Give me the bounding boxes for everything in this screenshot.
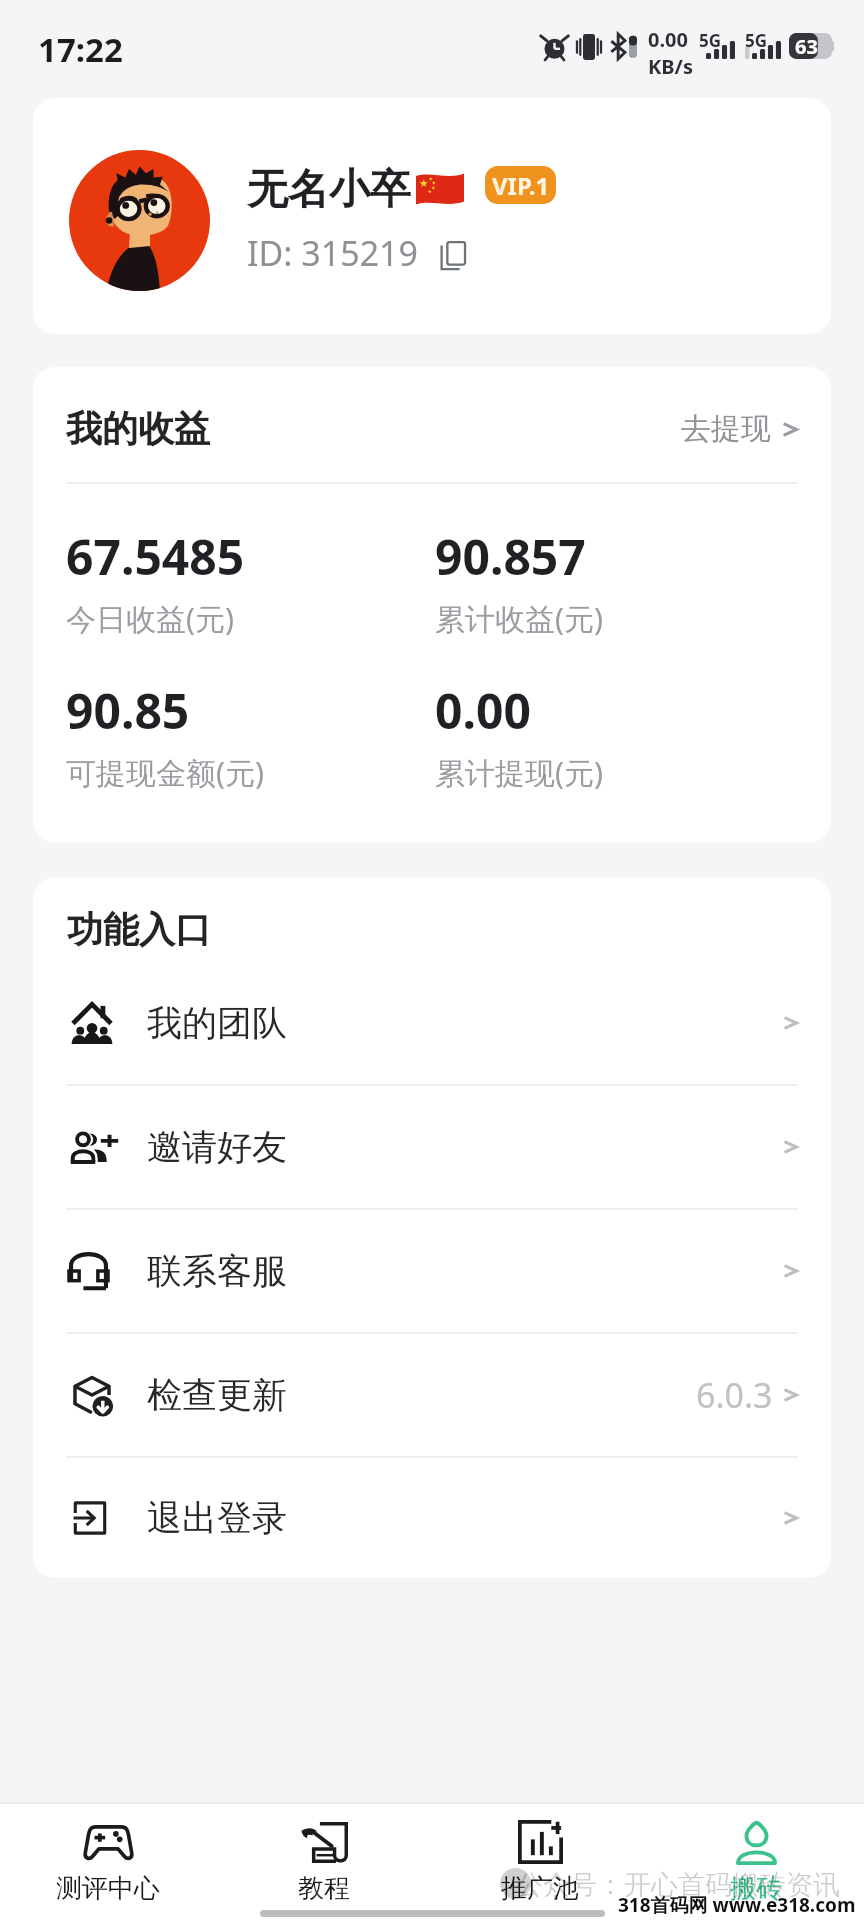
staticText: 我的团队 xyxy=(147,1001,287,1045)
staticText: 公众号：开心首码搬砖资讯 xyxy=(516,1868,840,1902)
button[interactable]: 无名小卒 xyxy=(33,98,831,334)
staticText: 67.5485 xyxy=(66,524,245,589)
staticText: 退出登录 xyxy=(147,1496,287,1540)
staticText: ID: 315219 xyxy=(247,230,418,276)
staticText: 教程 xyxy=(298,1872,350,1905)
button[interactable]: Copy ID xyxy=(440,240,467,271)
staticText: 推广池 xyxy=(501,1872,579,1905)
staticText: 搬砖 xyxy=(730,1872,782,1905)
staticText: 90.857 xyxy=(435,524,586,589)
staticText: 检查更新 xyxy=(147,1373,287,1417)
button[interactable]: 去提现 xyxy=(681,410,798,448)
staticText: 5G xyxy=(745,29,768,52)
button[interactable]: 邀请好友 xyxy=(33,1086,831,1208)
button[interactable]: 测评中心 xyxy=(0,1814,216,1910)
staticText: 90.85 xyxy=(66,678,190,743)
staticText: 6.0.3 xyxy=(696,1372,773,1418)
staticText: 联系客服 xyxy=(147,1249,287,1293)
staticText: 累计收益(元) xyxy=(435,598,603,639)
button[interactable]: 教程 xyxy=(216,1814,432,1910)
staticText: 邀请好友 xyxy=(147,1125,287,1169)
button[interactable]: 推广池 xyxy=(432,1814,648,1910)
staticText: 测评中心 xyxy=(56,1872,160,1905)
staticText: 功能入口 xyxy=(67,907,211,952)
staticText: 可提现金额(元) xyxy=(66,752,264,793)
staticText: 17:22 xyxy=(38,27,123,72)
staticText: 今日收益(元) xyxy=(66,598,234,639)
staticText: KB/s xyxy=(648,53,693,80)
staticText: 0.00 xyxy=(648,26,688,53)
button[interactable]: 联系客服 xyxy=(33,1210,831,1332)
staticText: 0.00 xyxy=(435,678,531,743)
staticText: VIP.1 xyxy=(492,169,550,202)
staticText: 318首码网 www.e318.com xyxy=(618,1892,856,1918)
button[interactable]: 退出登录 xyxy=(33,1458,831,1578)
staticText: 63 xyxy=(795,33,818,59)
button[interactable]: 检查更新 xyxy=(33,1334,831,1456)
staticText: 我的收益 xyxy=(66,406,210,451)
staticText: 累计提现(元) xyxy=(435,752,603,793)
button[interactable]: 搬砖 xyxy=(648,1814,864,1910)
staticText: 5G xyxy=(699,29,722,52)
staticText: 无名小卒 xyxy=(247,164,411,216)
button[interactable]: 我的团队 xyxy=(33,962,831,1084)
staticText: 去提现 xyxy=(681,410,771,448)
